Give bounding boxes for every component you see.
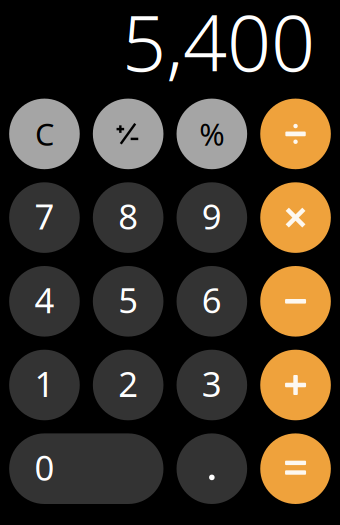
staticText: 5,400	[122, 0, 315, 93]
staticText: 7	[34, 193, 54, 239]
button[interactable]: Divide	[260, 99, 331, 169]
staticText: 1	[34, 360, 54, 406]
button[interactable]: Decimal point	[176, 433, 247, 504]
button[interactable]: Multiply	[260, 182, 331, 253]
button[interactable]: Minus	[260, 266, 331, 337]
staticText: 4	[34, 277, 54, 323]
button[interactable]: Plus	[260, 350, 331, 420]
staticText: 0	[34, 444, 54, 490]
staticText: 8	[118, 193, 138, 239]
button[interactable]: 5	[93, 266, 163, 337]
staticText: %	[199, 113, 224, 154]
button[interactable]: %	[176, 99, 247, 169]
staticText: 9	[202, 193, 222, 239]
button[interactable]: C	[9, 99, 80, 169]
button[interactable]: Equals	[260, 433, 331, 504]
staticText: 2	[118, 360, 138, 406]
staticText: 6	[202, 277, 222, 323]
staticText: C	[35, 113, 54, 154]
button[interactable]: 0	[9, 433, 163, 504]
button[interactable]: 8	[93, 182, 163, 253]
button[interactable]: Toggle sign	[93, 99, 163, 169]
button[interactable]: 4	[9, 266, 80, 337]
button[interactable]: 2	[93, 350, 163, 420]
staticText: 3	[202, 360, 222, 406]
button[interactable]: 3	[176, 350, 247, 420]
button[interactable]: 7	[9, 182, 80, 253]
button[interactable]: 9	[176, 182, 247, 253]
button[interactable]: 1	[9, 350, 80, 420]
button[interactable]: 6	[176, 266, 247, 337]
staticText: 5	[118, 277, 138, 323]
